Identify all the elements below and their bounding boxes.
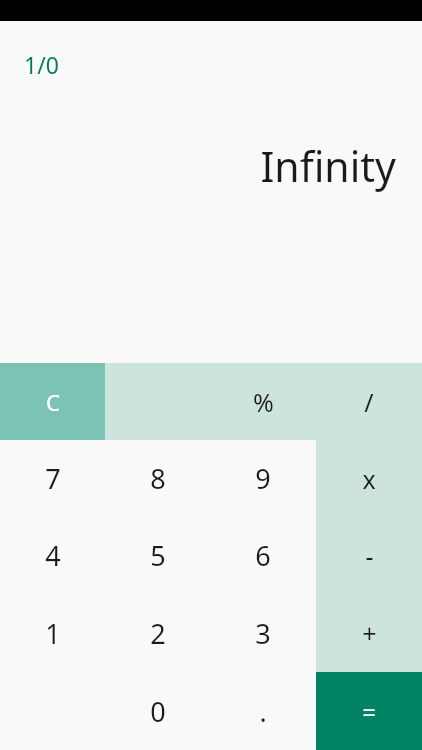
staticText: - <box>365 539 374 573</box>
staticText: x <box>362 462 376 496</box>
button[interactable]: 7 <box>0 440 105 517</box>
staticText: % <box>253 385 274 419</box>
button[interactable]: 5 <box>105 517 210 594</box>
button[interactable]: 9 <box>210 440 316 517</box>
staticText: 3 <box>255 615 271 652</box>
staticText: 6 <box>255 537 271 574</box>
button[interactable]: 1 <box>0 594 105 672</box>
button[interactable]: Add <box>316 594 422 672</box>
staticText: 8 <box>150 460 166 497</box>
staticText: Infinity <box>260 138 396 194</box>
staticText: . <box>259 693 267 730</box>
staticText: 4 <box>45 537 61 574</box>
button[interactable]: Clear <box>0 363 105 440</box>
staticText: = <box>362 695 376 728</box>
button[interactable]: Equals <box>316 672 422 750</box>
button[interactable]: Subtract <box>316 517 422 594</box>
button[interactable]: Multiply <box>316 440 422 517</box>
staticText: 2 <box>150 615 166 652</box>
staticText: 1 <box>45 615 61 652</box>
staticText: 1/0 <box>24 49 59 80</box>
button[interactable]: Decimal point <box>210 672 316 750</box>
button[interactable]: 2 <box>105 594 210 672</box>
button[interactable]: 3 <box>210 594 316 672</box>
staticText: 7 <box>45 460 61 497</box>
staticText: / <box>364 385 374 419</box>
button[interactable]: 6 <box>210 517 316 594</box>
staticText: + <box>362 616 377 650</box>
staticText: 9 <box>255 460 271 497</box>
button[interactable]: 8 <box>105 440 210 517</box>
button[interactable]: Percent <box>210 363 316 440</box>
button[interactable]: 4 <box>0 517 105 594</box>
button[interactable]: Divide <box>316 363 422 440</box>
staticText: 5 <box>150 537 166 574</box>
button[interactable]: 0 <box>105 672 210 750</box>
staticText: 0 <box>150 693 166 730</box>
staticText: C <box>46 387 60 417</box>
